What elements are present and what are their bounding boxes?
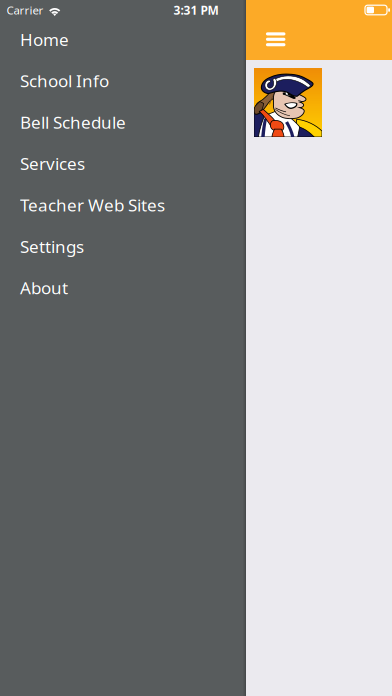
button[interactable]: Settings — [0, 226, 246, 267]
button[interactable]: School Info — [0, 60, 246, 101]
staticText: Carrier — [6, 2, 43, 18]
staticText: About — [20, 276, 68, 299]
button[interactable]: Menu — [254, 20, 298, 58]
staticText: Bell Schedule — [20, 110, 126, 134]
staticText: School Info — [20, 69, 109, 92]
staticText: Teacher Web Sites — [20, 193, 165, 216]
button[interactable]: Services — [0, 143, 246, 184]
button[interactable]: Teacher Web Sites — [0, 184, 246, 226]
staticText: Services — [20, 152, 85, 175]
staticText: Settings — [20, 235, 84, 258]
button[interactable]: About — [0, 267, 246, 308]
button[interactable]: Bell Schedule — [0, 101, 246, 143]
button[interactable]: Home — [0, 19, 246, 60]
staticText: Home — [20, 28, 69, 51]
staticText: 3:31 PM — [173, 2, 218, 18]
